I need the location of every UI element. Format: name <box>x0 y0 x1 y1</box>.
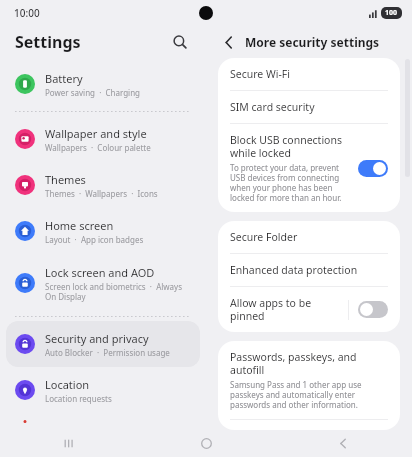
staticText: Samsung Pass and 1 other app use passkey… <box>230 379 388 410</box>
staticText: Auto Blocker · Permission usage <box>45 347 170 358</box>
button[interactable]: Back <box>218 31 240 53</box>
staticText: Allow apps to be pinned <box>230 296 342 323</box>
staticText: Themes · Wallpapers · Icons <box>45 188 158 199</box>
button[interactable]: Safety and emergency <box>6 413 200 430</box>
button[interactable]: Wallpaper and style <box>6 116 200 162</box>
staticText: Home screen <box>45 218 114 233</box>
button[interactable]: Home <box>138 430 275 457</box>
staticText: Settings <box>15 31 81 53</box>
staticText: Wallpapers · Colour palette <box>45 142 151 153</box>
staticText: Battery <box>45 71 83 86</box>
staticText: Passwords, passkeys, and autofill <box>230 350 388 377</box>
button[interactable]: Allow apps to be pinned <box>218 287 400 332</box>
button[interactable]: Passwords, passkeys, and autofill <box>218 341 400 419</box>
staticText: Secure Folder <box>230 230 298 244</box>
button[interactable]: Themes <box>6 162 200 208</box>
staticText: Layout · App icon badges <box>45 234 144 245</box>
staticText: Screen lock and biometrics · Always On D… <box>45 281 191 302</box>
staticText: Themes <box>45 172 86 187</box>
button[interactable]: Location <box>6 367 200 413</box>
button[interactable]: Search <box>168 30 192 54</box>
button[interactable]: Enhanced data protection <box>218 254 400 286</box>
staticText: Lock screen and AOD <box>45 265 155 280</box>
button[interactable]: Make passwords visible <box>218 420 400 430</box>
staticText: Wallpaper and style <box>45 126 147 141</box>
staticText: SIM card security <box>230 100 315 114</box>
button[interactable]: Home screen <box>6 208 200 254</box>
button[interactable]: Lock screen and AOD <box>6 254 200 312</box>
button[interactable]: Toggle on <box>358 160 388 177</box>
staticText: Enhanced data protection <box>230 263 358 277</box>
staticText: More security settings <box>245 34 380 50</box>
staticText: Power saving · Charging <box>45 87 141 98</box>
staticText: Secure Wi-Fi <box>230 67 291 81</box>
button[interactable]: Back <box>275 430 412 457</box>
button[interactable]: Battery <box>6 61 200 107</box>
staticText: Location <box>45 377 90 392</box>
button[interactable]: SIM card security <box>218 91 400 123</box>
staticText: To protect your data, prevent USB device… <box>230 162 352 203</box>
button[interactable]: Recents <box>0 430 138 457</box>
button[interactable]: Security and privacy <box>6 321 200 367</box>
button[interactable]: Toggle off <box>358 301 388 318</box>
staticText: 100 <box>385 8 398 18</box>
button[interactable]: Block USB connections while locked <box>218 124 400 212</box>
button[interactable]: Secure Folder <box>218 221 400 253</box>
button[interactable]: Secure Wi-Fi <box>218 58 400 90</box>
staticText: Location requests <box>45 393 112 404</box>
staticText: Block USB connections while locked <box>230 133 352 160</box>
staticText: 10:00 <box>14 6 40 20</box>
staticText: Security and privacy <box>45 331 149 346</box>
